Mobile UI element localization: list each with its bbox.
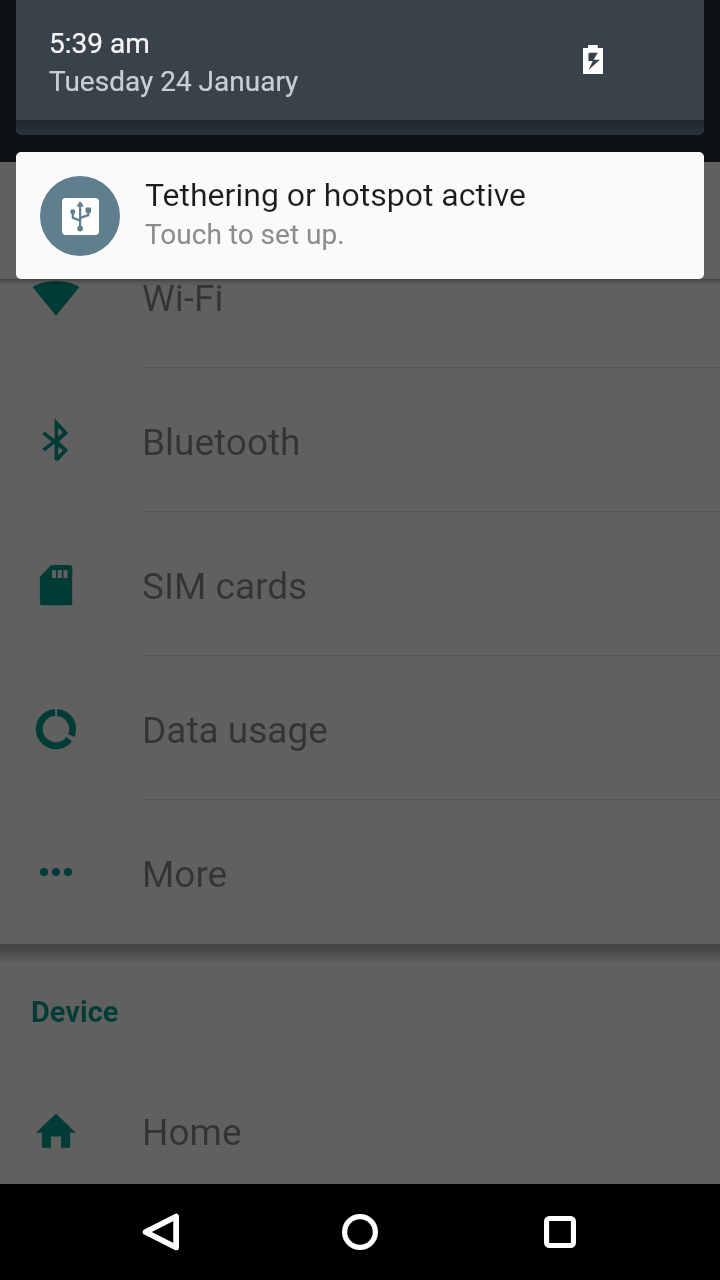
other: Battery charging: [583, 45, 603, 74]
staticText: Home: [142, 1111, 242, 1154]
staticText: Device: [31, 995, 119, 1029]
button[interactable]: Home: [312, 1184, 408, 1280]
button[interactable]: SIM cards: [0, 512, 720, 656]
staticText: Tuesday 24 January: [49, 65, 299, 98]
staticText: Tethering or hotspot active: [145, 176, 526, 214]
button[interactable]: Wi-Fi: [0, 224, 720, 368]
staticText: 5:39 am: [49, 27, 150, 60]
button[interactable]: Bluetooth: [0, 368, 720, 512]
button[interactable]: Back: [112, 1184, 208, 1280]
staticText: Wi-Fi: [142, 277, 224, 320]
button[interactable]: Recent apps: [512, 1184, 608, 1280]
button[interactable]: Tethering or hotspot active: [16, 152, 704, 279]
button[interactable]: Data usage: [0, 656, 720, 800]
staticText: Touch to set up.: [145, 218, 345, 251]
staticText: Bluetooth: [142, 421, 301, 464]
staticText: Data usage: [142, 709, 328, 752]
staticText: More: [142, 853, 228, 896]
staticText: SIM cards: [142, 565, 308, 608]
button[interactable]: Home: [0, 1058, 720, 1202]
button[interactable]: More: [0, 800, 720, 944]
